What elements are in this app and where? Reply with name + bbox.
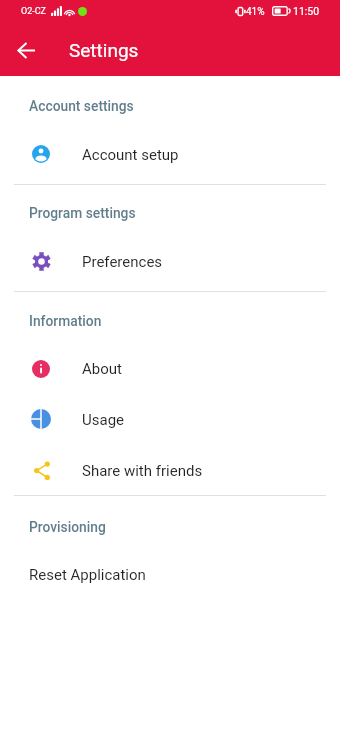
staticText: About [82,360,122,378]
staticText: Provisioning [29,519,106,535]
button[interactable]: Back [6,30,46,70]
button[interactable]: Reset Application [0,550,340,600]
staticText: Usage [82,411,125,429]
button[interactable]: About [0,344,340,394]
staticText: Information [29,313,102,329]
staticText: Program settings [29,205,136,221]
button[interactable]: Usage [0,394,340,444]
button[interactable]: Share with friends [0,445,340,495]
staticText: O2-CZ [21,6,46,17]
staticText: Account setup [82,146,179,164]
staticText: Preferences [82,253,163,271]
staticText: Settings [69,39,139,61]
staticText: Reset Application [29,566,146,584]
button[interactable]: Preferences [0,236,340,286]
staticText: Account settings [29,98,134,114]
staticText: Share with friends [82,462,203,480]
staticText: 41% [246,6,265,18]
staticText: 11:50 [293,5,320,17]
button[interactable]: Account setup [0,129,340,179]
